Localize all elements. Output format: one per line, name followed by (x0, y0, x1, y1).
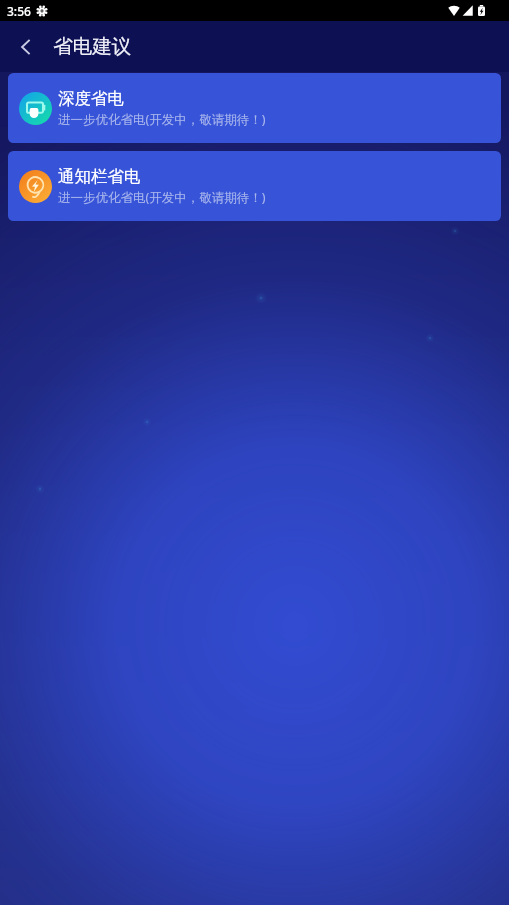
button[interactable]: 通知栏省电 (8, 151, 501, 221)
staticText: 省电建议 (53, 34, 132, 59)
staticText: 进一步优化省电(开发中，敬请期待！) (58, 189, 266, 206)
staticText: 3:56 (7, 3, 31, 19)
button[interactable]: 深度省电 (8, 73, 501, 143)
button[interactable]: Back (0, 21, 51, 72)
staticText: 进一步优化省电(开发中，敬请期待！) (58, 111, 266, 128)
staticText: 深度省电 (58, 88, 124, 109)
staticText: 通知栏省电 (58, 166, 141, 187)
